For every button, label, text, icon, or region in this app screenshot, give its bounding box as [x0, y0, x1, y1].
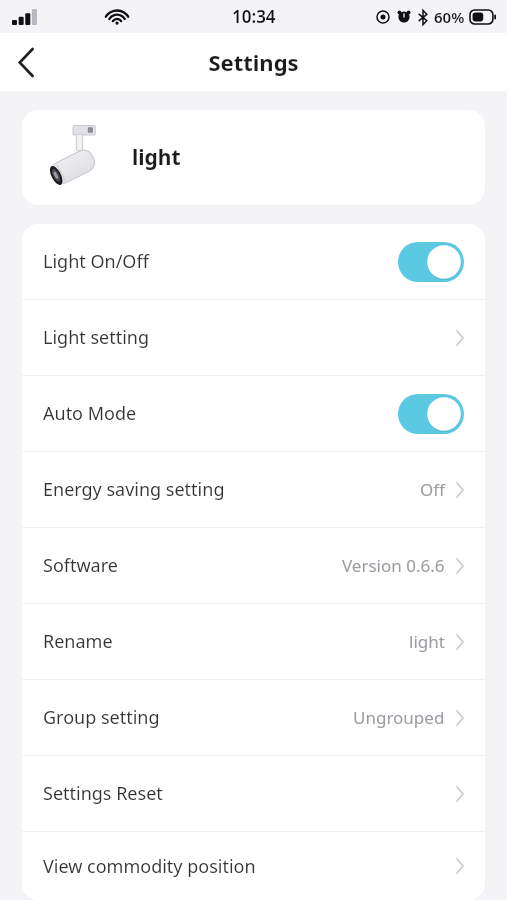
- staticText: Rename: [43, 629, 113, 654]
- button[interactable]: Light On/Off: [22, 224, 485, 299]
- button[interactable]: View commodity position: [22, 832, 485, 900]
- staticText: View commodity position: [43, 854, 256, 879]
- staticText: Group setting: [43, 705, 160, 730]
- staticText: Settings: [208, 47, 299, 77]
- staticText: light: [409, 630, 445, 653]
- staticText: Ungrouped: [353, 706, 445, 729]
- button[interactable]: Software: [22, 528, 485, 603]
- button[interactable]: Toggle: [398, 242, 464, 282]
- staticText: Software: [43, 553, 118, 578]
- staticText: Off: [420, 478, 445, 501]
- staticText: Light setting: [43, 325, 150, 350]
- button[interactable]: Group setting: [22, 680, 485, 755]
- staticText: light: [132, 143, 181, 172]
- button[interactable]: Auto Mode: [22, 376, 485, 451]
- staticText: Light On/Off: [43, 249, 149, 274]
- button[interactable]: light: [22, 110, 485, 205]
- staticText: Auto Mode: [43, 401, 137, 426]
- staticText: 60%: [434, 7, 465, 27]
- staticText: Energy saving setting: [43, 477, 225, 502]
- staticText: 10:34: [232, 5, 276, 28]
- button[interactable]: Rename: [22, 604, 485, 679]
- button[interactable]: Settings Reset: [22, 756, 485, 831]
- staticText: Version 0.6.6: [342, 554, 445, 577]
- staticText: Settings Reset: [43, 781, 163, 806]
- button[interactable]: Energy saving setting: [22, 452, 485, 527]
- button[interactable]: Toggle: [398, 394, 464, 434]
- button[interactable]: Light setting: [22, 300, 485, 375]
- button[interactable]: Back: [0, 36, 52, 88]
